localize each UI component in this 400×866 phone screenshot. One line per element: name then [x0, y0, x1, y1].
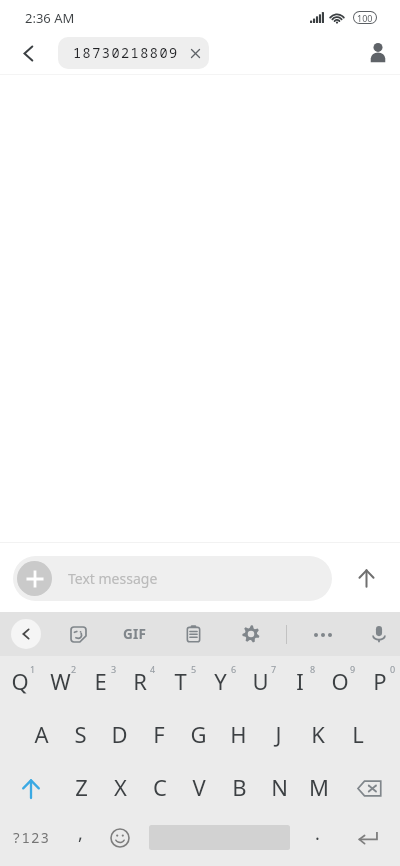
- staticText: X: [114, 772, 127, 802]
- staticText: GIF: [123, 625, 147, 643]
- staticText: 18730218809: [73, 44, 179, 62]
- staticText: 4: [150, 663, 156, 675]
- staticText: Z: [75, 772, 88, 802]
- button[interactable]: Backspace: [339, 762, 400, 815]
- button[interactable]: .: [297, 812, 337, 863]
- staticText: D: [111, 719, 128, 749]
- button[interactable]: Space: [143, 812, 296, 863]
- staticText: H: [230, 719, 247, 749]
- button[interactable]: J: [258, 709, 298, 762]
- staticText: Y: [214, 666, 227, 696]
- staticText: Text message: [68, 569, 158, 588]
- staticText: E: [94, 666, 107, 696]
- button[interactable]: H: [218, 709, 258, 762]
- button[interactable]: K: [298, 709, 338, 762]
- staticText: U: [252, 666, 269, 696]
- staticText: I: [296, 666, 304, 696]
- button[interactable]: Emoji: [100, 812, 140, 863]
- staticText: R: [133, 666, 147, 696]
- staticText: 2:36 AM: [25, 9, 75, 27]
- staticText: 5: [191, 663, 197, 675]
- staticText: P: [373, 666, 387, 696]
- button[interactable]: D: [100, 709, 139, 762]
- staticText: 8: [310, 663, 316, 675]
- button[interactable]: B: [219, 762, 259, 815]
- staticText: J: [275, 719, 282, 749]
- button[interactable]: C: [140, 762, 179, 815]
- staticText: K: [311, 719, 325, 749]
- staticText: 7: [271, 663, 277, 675]
- button[interactable]: Add attachment: [13, 556, 332, 601]
- staticText: 0: [390, 663, 396, 675]
- staticText: T: [174, 666, 187, 696]
- staticText: S: [74, 719, 87, 749]
- staticText: M: [309, 772, 329, 802]
- button[interactable]: 18730218809: [58, 37, 209, 69]
- button[interactable]: T: [160, 656, 200, 709]
- button[interactable]: S: [61, 709, 100, 762]
- button[interactable]: R: [120, 656, 160, 709]
- staticText: 6: [231, 663, 237, 675]
- button[interactable]: Enter: [341, 812, 393, 863]
- button[interactable]: Hide toolbar: [11, 619, 41, 649]
- button[interactable]: Stickers: [62, 618, 94, 650]
- staticText: O: [331, 666, 349, 696]
- button[interactable]: ?123: [0, 812, 62, 863]
- staticText: F: [153, 719, 165, 749]
- button[interactable]: N: [259, 762, 299, 815]
- button[interactable]: M: [299, 762, 339, 815]
- button[interactable]: Q: [0, 656, 40, 709]
- button[interactable]: Voice input: [363, 618, 395, 650]
- button[interactable]: U: [240, 656, 280, 709]
- button[interactable]: O: [320, 656, 360, 709]
- staticText: 100: [357, 12, 373, 23]
- staticText: Q: [11, 666, 29, 696]
- button[interactable]: GIF: [118, 619, 152, 649]
- staticText: W: [50, 666, 71, 696]
- button[interactable]: Clipboard: [177, 618, 209, 650]
- staticText: V: [192, 772, 206, 802]
- button[interactable]: W: [40, 656, 80, 709]
- button[interactable]: G: [178, 709, 218, 762]
- staticText: N: [271, 772, 288, 802]
- button[interactable]: Contact details: [360, 35, 396, 71]
- staticText: .: [315, 821, 320, 846]
- button[interactable]: Back: [10, 35, 46, 71]
- button[interactable]: I: [280, 656, 320, 709]
- staticText: 1: [30, 663, 36, 675]
- button[interactable]: Add attachment: [17, 561, 52, 596]
- staticText: B: [232, 772, 247, 802]
- button[interactable]: Send: [348, 560, 384, 596]
- button[interactable]: Y: [200, 656, 240, 709]
- button[interactable]: F: [139, 709, 178, 762]
- staticText: A: [34, 719, 49, 749]
- button[interactable]: ,: [60, 812, 100, 863]
- button[interactable]: Settings: [235, 618, 267, 650]
- staticText: ?123: [12, 828, 50, 847]
- button[interactable]: X: [101, 762, 140, 815]
- staticText: 3: [111, 663, 117, 675]
- button[interactable]: A: [22, 709, 61, 762]
- staticText: G: [190, 719, 207, 749]
- button[interactable]: L: [338, 709, 378, 762]
- staticText: 2: [71, 663, 77, 675]
- button[interactable]: P: [360, 656, 400, 709]
- button[interactable]: V: [179, 762, 219, 815]
- button[interactable]: Shift: [0, 762, 62, 815]
- button[interactable]: E: [80, 656, 120, 709]
- button[interactable]: More options: [307, 619, 338, 650]
- staticText: ,: [78, 821, 83, 846]
- staticText: C: [153, 772, 167, 802]
- staticText: L: [352, 719, 364, 749]
- staticText: 9: [350, 663, 356, 675]
- button[interactable]: Z: [62, 762, 101, 815]
